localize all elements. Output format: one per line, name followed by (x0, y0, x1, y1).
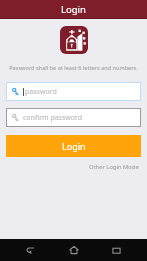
staticText: password (25, 87, 57, 97)
staticText: Login (62, 140, 86, 152)
staticText: confirm password (23, 113, 83, 123)
staticText: Login (61, 3, 86, 16)
staticText: Other Login Mode (89, 163, 139, 171)
button[interactable]: Back (19, 239, 43, 261)
button[interactable]: password (6, 82, 141, 101)
button[interactable]: Other Login Mode (87, 161, 141, 173)
button[interactable]: Home (62, 239, 86, 261)
staticText: Password shall be at least 6 letters and… (9, 64, 138, 72)
button[interactable]: confirm password (6, 108, 141, 127)
button[interactable]: Recent apps (104, 239, 128, 261)
button[interactable]: Login (6, 135, 141, 157)
